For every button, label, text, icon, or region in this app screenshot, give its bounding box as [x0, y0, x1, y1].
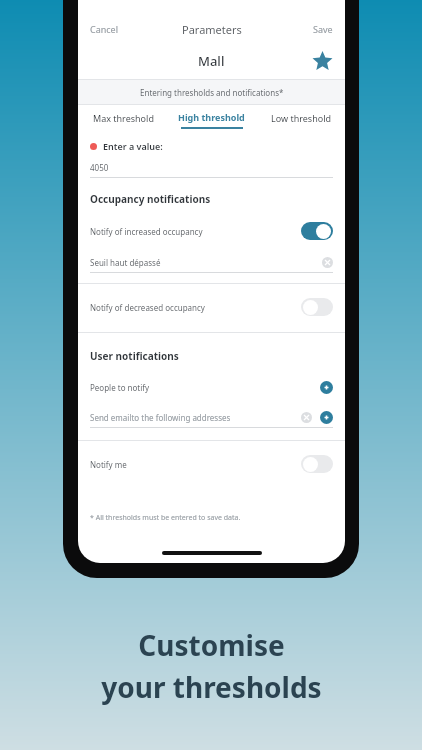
staticText: High threshold: [178, 111, 245, 123]
staticText: Low threshold: [271, 112, 331, 124]
button[interactable]: Clear: [322, 257, 333, 268]
staticText: Customise: [138, 626, 285, 664]
other: Off: [301, 455, 333, 473]
button[interactable]: Add: [320, 411, 333, 424]
button[interactable]: Notify of decreased occupancy: [78, 294, 345, 320]
other: On: [301, 222, 333, 240]
staticText: People to notify: [90, 382, 320, 393]
button[interactable]: Add: [320, 381, 333, 394]
staticText: Entering thresholds and notifications*: [140, 87, 284, 98]
staticText: your thresholds: [101, 668, 322, 706]
staticText: Parameters: [182, 22, 242, 37]
staticText: * All thresholds must be entered to save…: [90, 513, 241, 523]
staticText: Seuil haut dépassé: [90, 257, 322, 268]
button[interactable]: Save: [313, 23, 345, 35]
button[interactable]: Favourite: [311, 50, 333, 72]
button[interactable]: Notify me: [78, 451, 345, 477]
staticText: Enter a value:: [103, 140, 163, 152]
staticText: 4050: [90, 162, 109, 173]
button[interactable]: High threshold: [167, 105, 256, 135]
staticText: Mall: [198, 52, 225, 70]
button[interactable]: Low threshold: [256, 105, 345, 135]
staticText: Max threshold: [93, 112, 154, 124]
other: Off: [301, 298, 333, 316]
staticText: Occupancy notifications: [90, 192, 211, 206]
staticText: Notify me: [90, 459, 301, 470]
staticText: User notifications: [90, 349, 179, 363]
staticText: Notify of decreased occupancy: [90, 302, 301, 313]
button[interactable]: Clear: [301, 412, 312, 423]
staticText: Notify of increased occupancy: [90, 226, 301, 237]
button[interactable]: Max threshold: [78, 105, 167, 135]
staticText: Send emailto the following addresses: [90, 412, 301, 423]
button[interactable]: Notify of increased occupancy: [78, 218, 345, 244]
button[interactable]: Cancel: [78, 23, 119, 35]
